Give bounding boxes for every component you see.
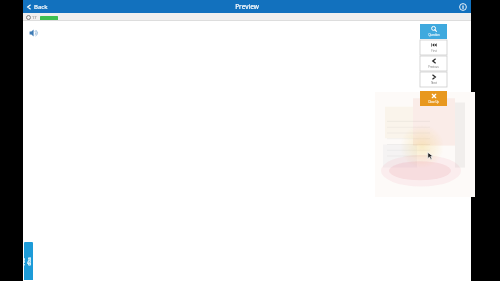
staticText: 17 (32, 15, 37, 20)
button[interactable]: Feedback (24, 242, 33, 280)
button[interactable]: First (420, 40, 447, 55)
button[interactable]: Back (23, 0, 54, 13)
staticText: First (431, 49, 437, 53)
button[interactable]: Audio (27, 26, 41, 40)
staticText: Question (428, 33, 440, 37)
button[interactable]: Information (455, 0, 471, 13)
button[interactable]: Close Up (420, 91, 447, 106)
staticText: Back (34, 3, 48, 11)
staticText: Feedback (24, 256, 33, 265)
staticText: Next (431, 81, 437, 85)
button[interactable]: Question (420, 24, 447, 39)
button[interactable]: Next (420, 72, 447, 87)
button[interactable]: Previous (420, 56, 447, 71)
staticText: Preview (235, 2, 259, 11)
staticText: Close Up (428, 100, 439, 104)
staticText: Previous (428, 65, 439, 69)
